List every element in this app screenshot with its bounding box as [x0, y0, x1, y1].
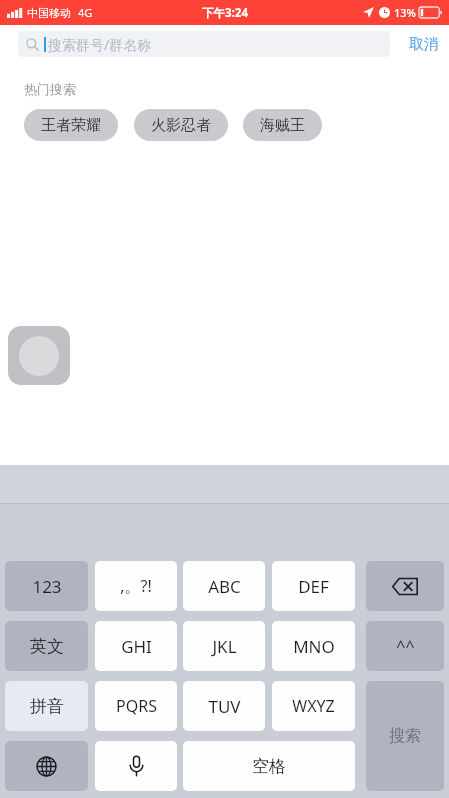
button[interactable]: 搜索群号/群名称 — [18, 31, 390, 57]
button[interactable]: 王者荣耀 — [24, 109, 118, 141]
staticText: WXYZ — [292, 695, 335, 717]
staticText: 123 — [32, 575, 62, 598]
button[interactable]: ,。?! — [95, 561, 177, 611]
staticText: 下午3:24 — [202, 5, 248, 21]
staticText: 中国移动 — [27, 6, 71, 20]
staticText: 王者荣耀 — [41, 116, 101, 135]
staticText: 拼音 — [30, 696, 64, 717]
button[interactable]: Change keyboard — [5, 741, 88, 791]
staticText: 热门搜索 — [24, 81, 76, 97]
button[interactable]: Delete — [366, 561, 444, 611]
button[interactable]: WXYZ — [272, 681, 355, 731]
staticText: 空格 — [252, 756, 286, 777]
button[interactable]: TUV — [183, 681, 265, 731]
button[interactable]: JKL — [183, 621, 265, 671]
staticText: JKL — [212, 635, 237, 658]
button[interactable]: 取消 — [399, 29, 449, 60]
staticText: 英文 — [30, 636, 64, 657]
staticText: TUV — [208, 695, 241, 718]
staticText: ,。?! — [120, 575, 152, 597]
button[interactable]: 空格 — [183, 741, 355, 791]
button[interactable]: 海贼王 — [243, 109, 322, 141]
button[interactable]: 123 — [5, 561, 88, 611]
button[interactable]: GHI — [95, 621, 177, 671]
button[interactable]: 拼音 — [5, 681, 88, 731]
button[interactable]: DEF — [272, 561, 355, 611]
button[interactable]: ABC — [183, 561, 265, 611]
staticText: MNO — [293, 635, 335, 658]
staticText: 搜索 — [389, 726, 421, 746]
staticText: 4G — [78, 5, 93, 20]
staticText: PQRS — [116, 695, 157, 717]
staticText: DEF — [298, 575, 329, 598]
button[interactable]: PQRS — [95, 681, 177, 731]
staticText: 搜索群号/群名称 — [48, 35, 152, 54]
staticText: 13% — [394, 5, 416, 20]
button[interactable]: 火影忍者 — [134, 109, 228, 141]
button[interactable]: ^^ — [366, 621, 444, 671]
staticText: 海贼王 — [260, 116, 305, 135]
staticText: 取消 — [409, 35, 439, 54]
button[interactable]: Voice input — [95, 741, 177, 791]
staticText: ^^ — [396, 635, 415, 657]
button[interactable]: MNO — [272, 621, 355, 671]
staticText: ABC — [208, 575, 241, 598]
button[interactable]: 搜索 — [366, 681, 444, 791]
staticText: GHI — [121, 635, 152, 658]
staticText: 火影忍者 — [151, 116, 211, 135]
button[interactable]: 英文 — [5, 621, 88, 671]
